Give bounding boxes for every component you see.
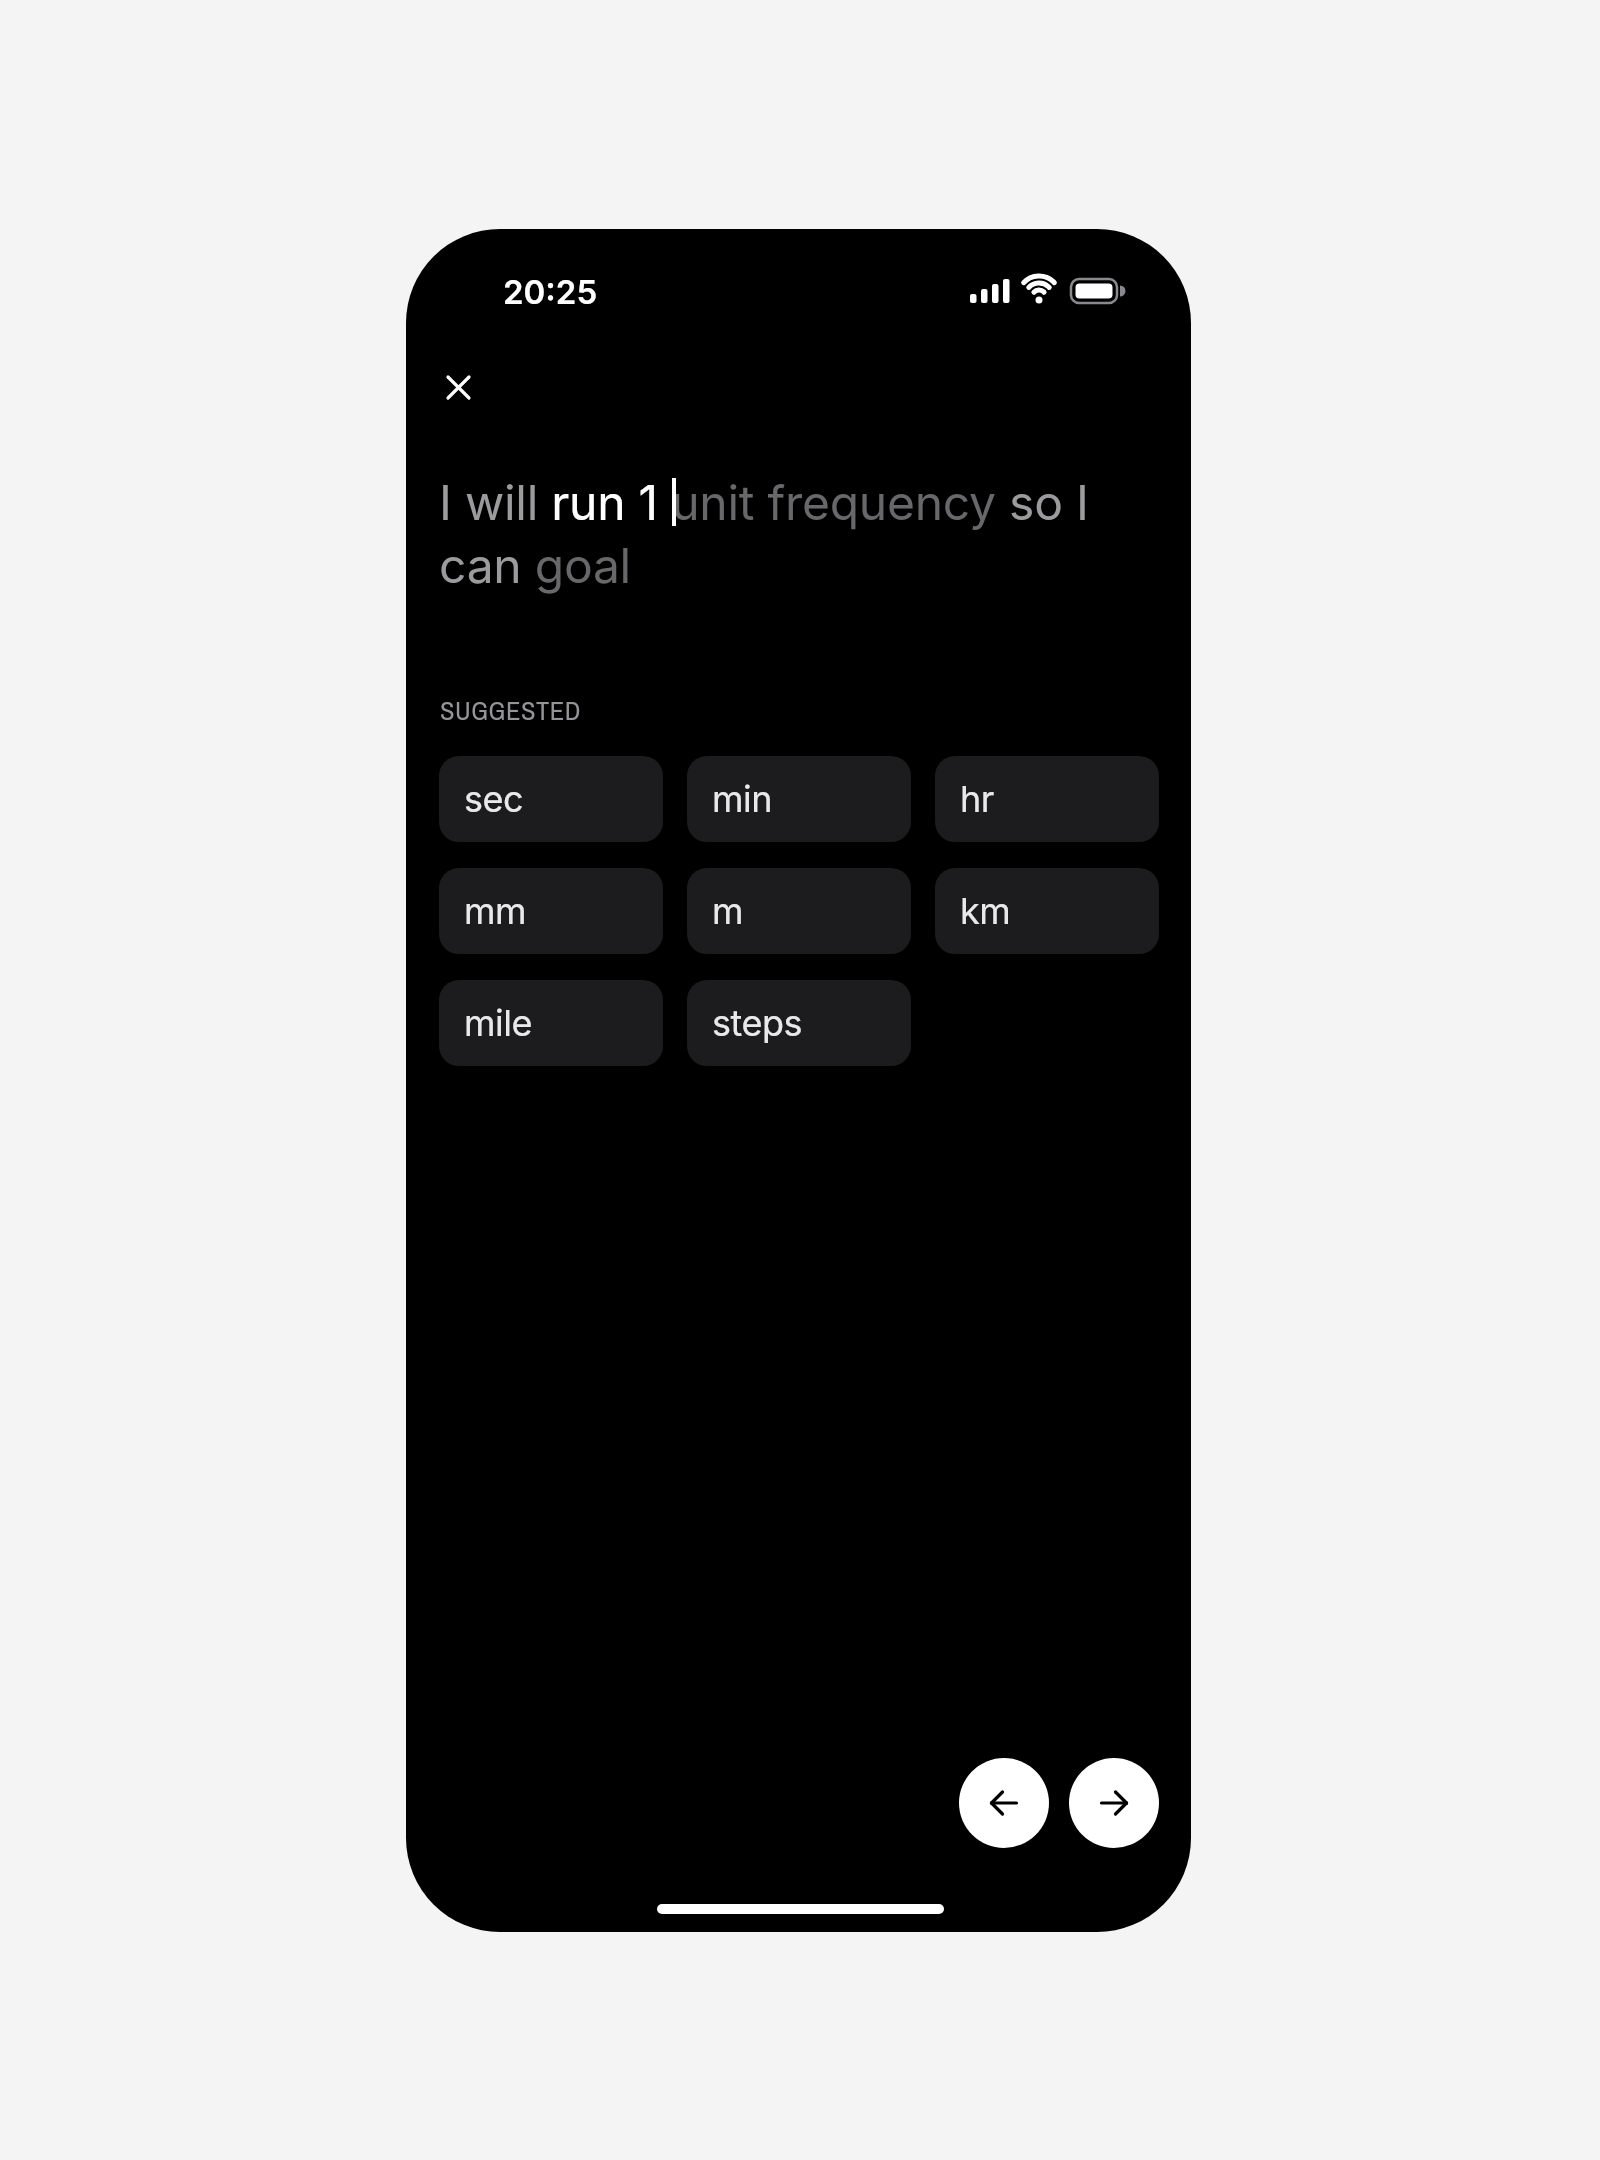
button[interactable]: hr — [935, 756, 1159, 842]
button[interactable]: sec — [439, 756, 663, 842]
staticText: km — [960, 889, 1011, 933]
button[interactable] — [1069, 1758, 1159, 1848]
button[interactable]: m — [687, 868, 911, 954]
button[interactable]: steps — [687, 980, 911, 1066]
staticText: SUGGESTED — [440, 693, 581, 729]
staticText: hr — [960, 777, 994, 821]
staticText: steps — [712, 1001, 802, 1045]
staticText: m — [712, 889, 744, 933]
button[interactable]: mm — [439, 868, 663, 954]
staticText: min — [712, 777, 773, 821]
button[interactable]: min — [687, 756, 911, 842]
staticText: mile — [464, 1001, 532, 1045]
staticText: sec — [464, 777, 524, 821]
button[interactable] — [959, 1758, 1049, 1848]
button[interactable] — [436, 365, 480, 409]
staticText: 20:25 — [503, 272, 598, 312]
staticText: can goal — [439, 536, 631, 594]
staticText: I will run 1 unit frequency so I — [439, 473, 1089, 531]
button[interactable]: km — [935, 868, 1159, 954]
staticText: mm — [464, 889, 527, 933]
button[interactable]: mile — [439, 980, 663, 1066]
